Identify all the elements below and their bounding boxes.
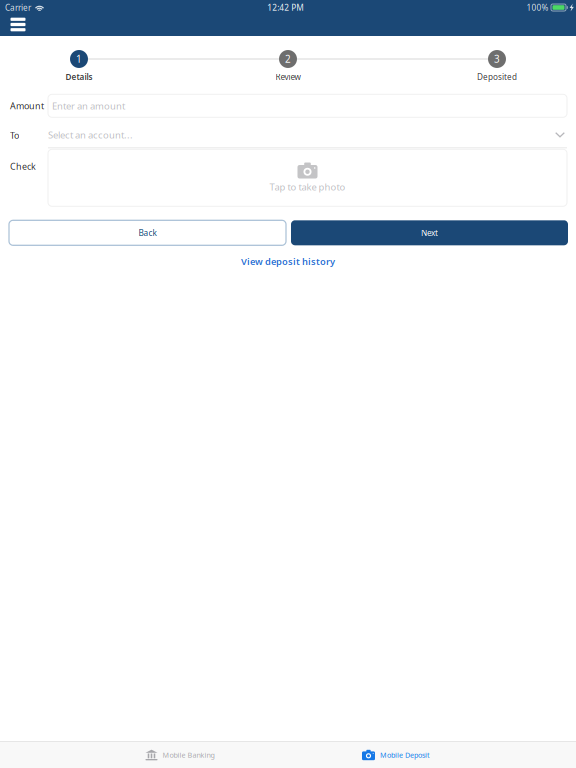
staticText: Tap to take photo [269,180,345,193]
staticText: 12:42 PM [267,2,304,13]
staticText: To [10,129,19,141]
staticText: 3 [494,52,500,65]
staticText: Review [275,71,300,82]
staticText: Check [10,160,36,172]
button[interactable]: Enter an amount [48,94,567,117]
button[interactable]: Tap to take photo [48,149,567,206]
staticText: Carrier [5,2,31,13]
button[interactable]: Select an account... [48,122,567,148]
staticText: Details [65,71,92,82]
staticText: Deposited [477,71,517,82]
staticText: Select an account... [48,128,133,141]
button[interactable]: Next [291,220,568,245]
staticText: Mobile Banking [162,750,214,760]
staticText: Enter an amount [52,99,125,112]
button[interactable]: Back [9,220,286,245]
staticText: View deposit history [241,255,335,268]
staticText: 2 [285,52,291,65]
button[interactable]: View deposit history [241,250,335,273]
staticText: 100% [526,2,548,13]
button[interactable]: Menu [3,14,33,35]
staticText: Next [421,227,438,238]
button[interactable]: Mobile Deposit [341,742,451,768]
staticText: Back [138,227,156,238]
button[interactable]: Mobile Banking [125,742,235,768]
staticText: Mobile Deposit [380,750,430,760]
staticText: Amount [10,100,44,112]
staticText: 1 [76,52,82,65]
